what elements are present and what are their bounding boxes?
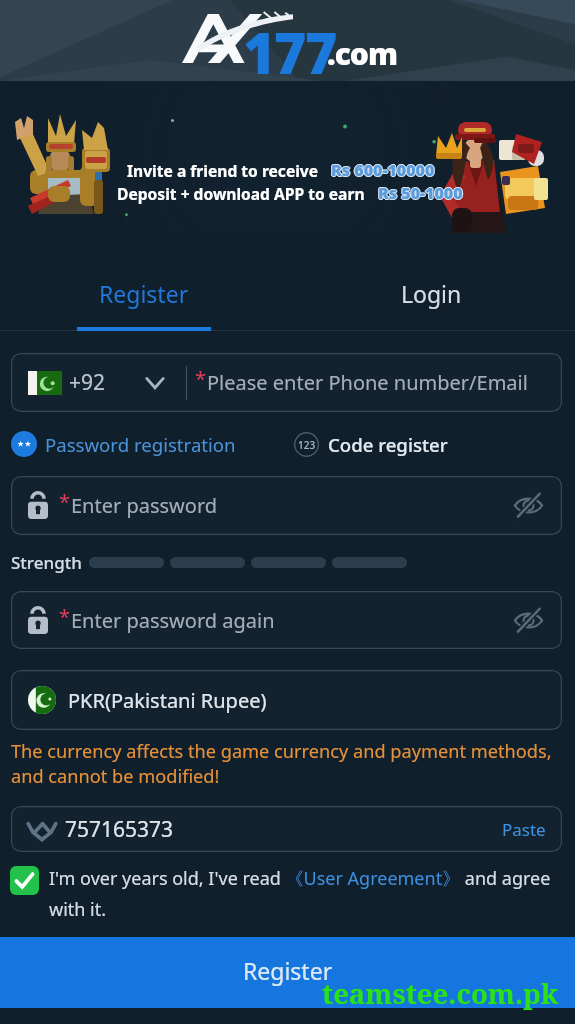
button[interactable]: +92 xyxy=(11,353,562,412)
staticText: Rs 50-1000 xyxy=(377,182,462,204)
staticText: Enter password again xyxy=(71,607,275,634)
button[interactable]: Show password xyxy=(513,490,544,521)
staticText: Login xyxy=(401,278,462,309)
staticText: Rs 50-1000 xyxy=(379,182,464,204)
staticText: 123 xyxy=(298,438,316,452)
staticText: Rs 600-10000 xyxy=(331,159,435,181)
button[interactable]: 123 xyxy=(294,429,448,459)
staticText: Rs 600-10000 xyxy=(331,160,435,182)
button[interactable]: Show password xyxy=(513,605,544,636)
staticText: +92 xyxy=(69,368,106,397)
staticText: Enter password xyxy=(71,492,218,519)
button[interactable]: * xyxy=(11,476,562,535)
staticText: Strength xyxy=(11,551,82,574)
staticText: Rs 600-10000 xyxy=(331,158,435,180)
button[interactable]: Paste xyxy=(502,818,546,841)
staticText: 177 xyxy=(243,14,336,90)
button[interactable]: * xyxy=(11,591,562,649)
button[interactable]: Login xyxy=(287,255,575,331)
button[interactable]: Register xyxy=(0,255,287,331)
staticText: Rs 50-1000 xyxy=(378,182,463,204)
staticText: PKR(Pakistani Rupee) xyxy=(68,687,267,714)
staticText: Rs 50-1000 xyxy=(378,183,463,205)
staticText: Paste xyxy=(502,818,546,841)
staticText: Invite a friend to receive xyxy=(127,160,319,181)
staticText: Rs 50-1000 xyxy=(378,181,463,203)
button[interactable]: Password registration xyxy=(11,429,236,459)
staticText: Register xyxy=(243,955,333,986)
staticText: Register xyxy=(99,278,189,309)
staticText: .com xyxy=(327,33,397,74)
staticText: Password registration xyxy=(45,432,236,457)
staticText: * xyxy=(59,603,71,630)
staticText: 757165373 xyxy=(65,815,174,844)
staticText: * xyxy=(195,365,207,392)
button[interactable]: Agree to user agreement xyxy=(10,866,39,895)
staticText: Code register xyxy=(328,432,448,457)
staticText: I'm over years old, I've read 《User Agre… xyxy=(49,866,554,921)
staticText: Rs 600-10000 xyxy=(332,159,436,181)
button[interactable]: Register xyxy=(0,937,575,1008)
staticText: The currency affects the game currency a… xyxy=(11,739,561,789)
staticText: teamstee.com.pk xyxy=(322,975,559,1012)
staticText: Deposit + download APP to earn xyxy=(117,183,365,204)
staticText: Please enter Phone number/Email xyxy=(207,369,528,396)
staticText: * xyxy=(59,488,71,515)
button[interactable]: PKR(Pakistani Rupee) xyxy=(11,670,562,730)
button[interactable]: 757165373 xyxy=(11,806,562,852)
staticText: Rs 600-10000 xyxy=(330,159,434,181)
